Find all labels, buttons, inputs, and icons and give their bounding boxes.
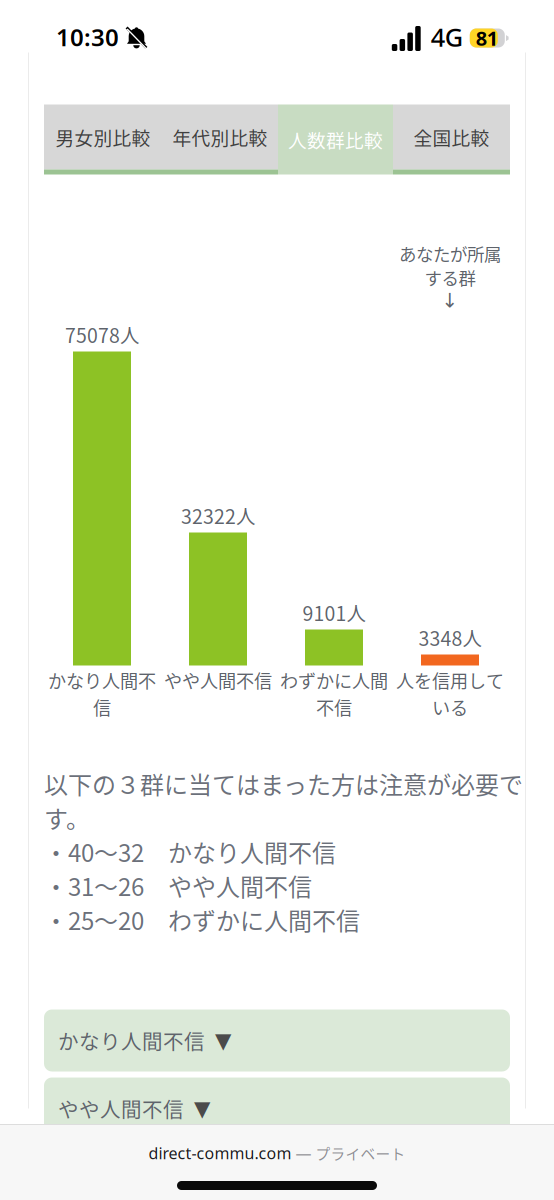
staticText: ▼ [194, 1096, 210, 1121]
staticText: 人数群比較 [288, 126, 383, 153]
staticText: する群 [424, 265, 475, 290]
staticText: 信 [93, 694, 111, 720]
staticText: direct-commu.com [148, 1142, 291, 1164]
staticText: ▼ [215, 1028, 231, 1053]
staticText: 不信 [316, 694, 352, 720]
staticText: 81 [476, 25, 498, 51]
button[interactable]: かなり人間不信 [44, 1009, 510, 1071]
staticText: ・25〜20 わずかに人間不信 [44, 902, 360, 937]
staticText: 75078人 [65, 320, 139, 349]
staticText: かなり人間不信 [58, 1026, 205, 1055]
staticText: 人を信用して [396, 667, 504, 693]
staticText: 4G [431, 20, 463, 54]
staticText: わずかに人間 [280, 667, 388, 693]
button[interactable]: 人数群比較 [278, 104, 393, 174]
button[interactable]: direct-commu.com [0, 1133, 554, 1173]
staticText: す。 [44, 800, 90, 835]
staticText: かなり人間不 [48, 667, 156, 693]
button[interactable]: 男女別比較 [44, 104, 162, 174]
button[interactable]: やや人間不信 [44, 1077, 510, 1139]
staticText: 3348人 [418, 623, 481, 652]
staticText: 9101人 [302, 598, 365, 627]
staticText: 32322人 [181, 501, 255, 530]
staticText: 男女別比較 [55, 123, 150, 150]
staticText: ↓ [441, 289, 458, 312]
staticText: 年代別比較 [172, 123, 267, 150]
staticText: いる [432, 694, 468, 720]
button[interactable]: 全国比較 [393, 104, 510, 174]
staticText: やや人間不信 [164, 667, 272, 693]
staticText: プライベート [315, 1142, 405, 1164]
staticText: 以下の３群に当てはまった方は注意が必要で [44, 766, 523, 801]
staticText: あなたが所属 [399, 241, 501, 266]
staticText: ・40〜32 かなり人間不信 [44, 834, 336, 869]
staticText: やや人間不信 [58, 1094, 184, 1123]
staticText: ・31〜26 やや人間不信 [44, 868, 312, 903]
staticText: — [291, 1142, 315, 1164]
staticText: 10:30 [56, 21, 119, 53]
button[interactable]: 年代別比較 [162, 104, 278, 174]
staticText: 全国比較 [413, 123, 489, 150]
